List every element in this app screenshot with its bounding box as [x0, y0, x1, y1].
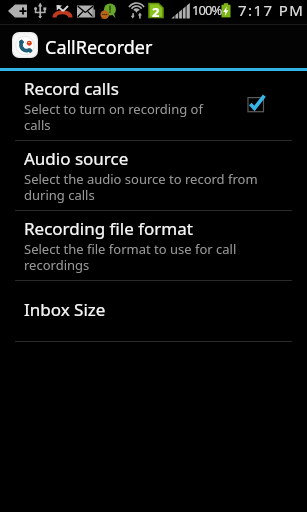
button[interactable]: Audio source [0, 141, 307, 210]
staticText: 2 [152, 3, 160, 21]
staticText: 100% [192, 1, 222, 19]
staticText: Select the file format to use for call r… [24, 240, 269, 273]
button[interactable]: Inbox Size [0, 281, 307, 341]
button[interactable]: Recording file format [0, 211, 307, 280]
staticText: CallRecorder [45, 35, 153, 60]
staticText: Recording file format [24, 217, 193, 240]
button[interactable]: Record calls [0, 71, 307, 140]
staticText: 7:17 PM [238, 0, 305, 20]
staticText: Audio source [24, 147, 129, 170]
button[interactable]: Record calls toggle [240, 88, 272, 120]
staticText: Select the audio source to record from d… [24, 170, 269, 203]
staticText: Select to turn on recording of calls [24, 100, 206, 133]
staticText: Record calls [24, 77, 119, 100]
staticText: Inbox Size [24, 298, 106, 321]
